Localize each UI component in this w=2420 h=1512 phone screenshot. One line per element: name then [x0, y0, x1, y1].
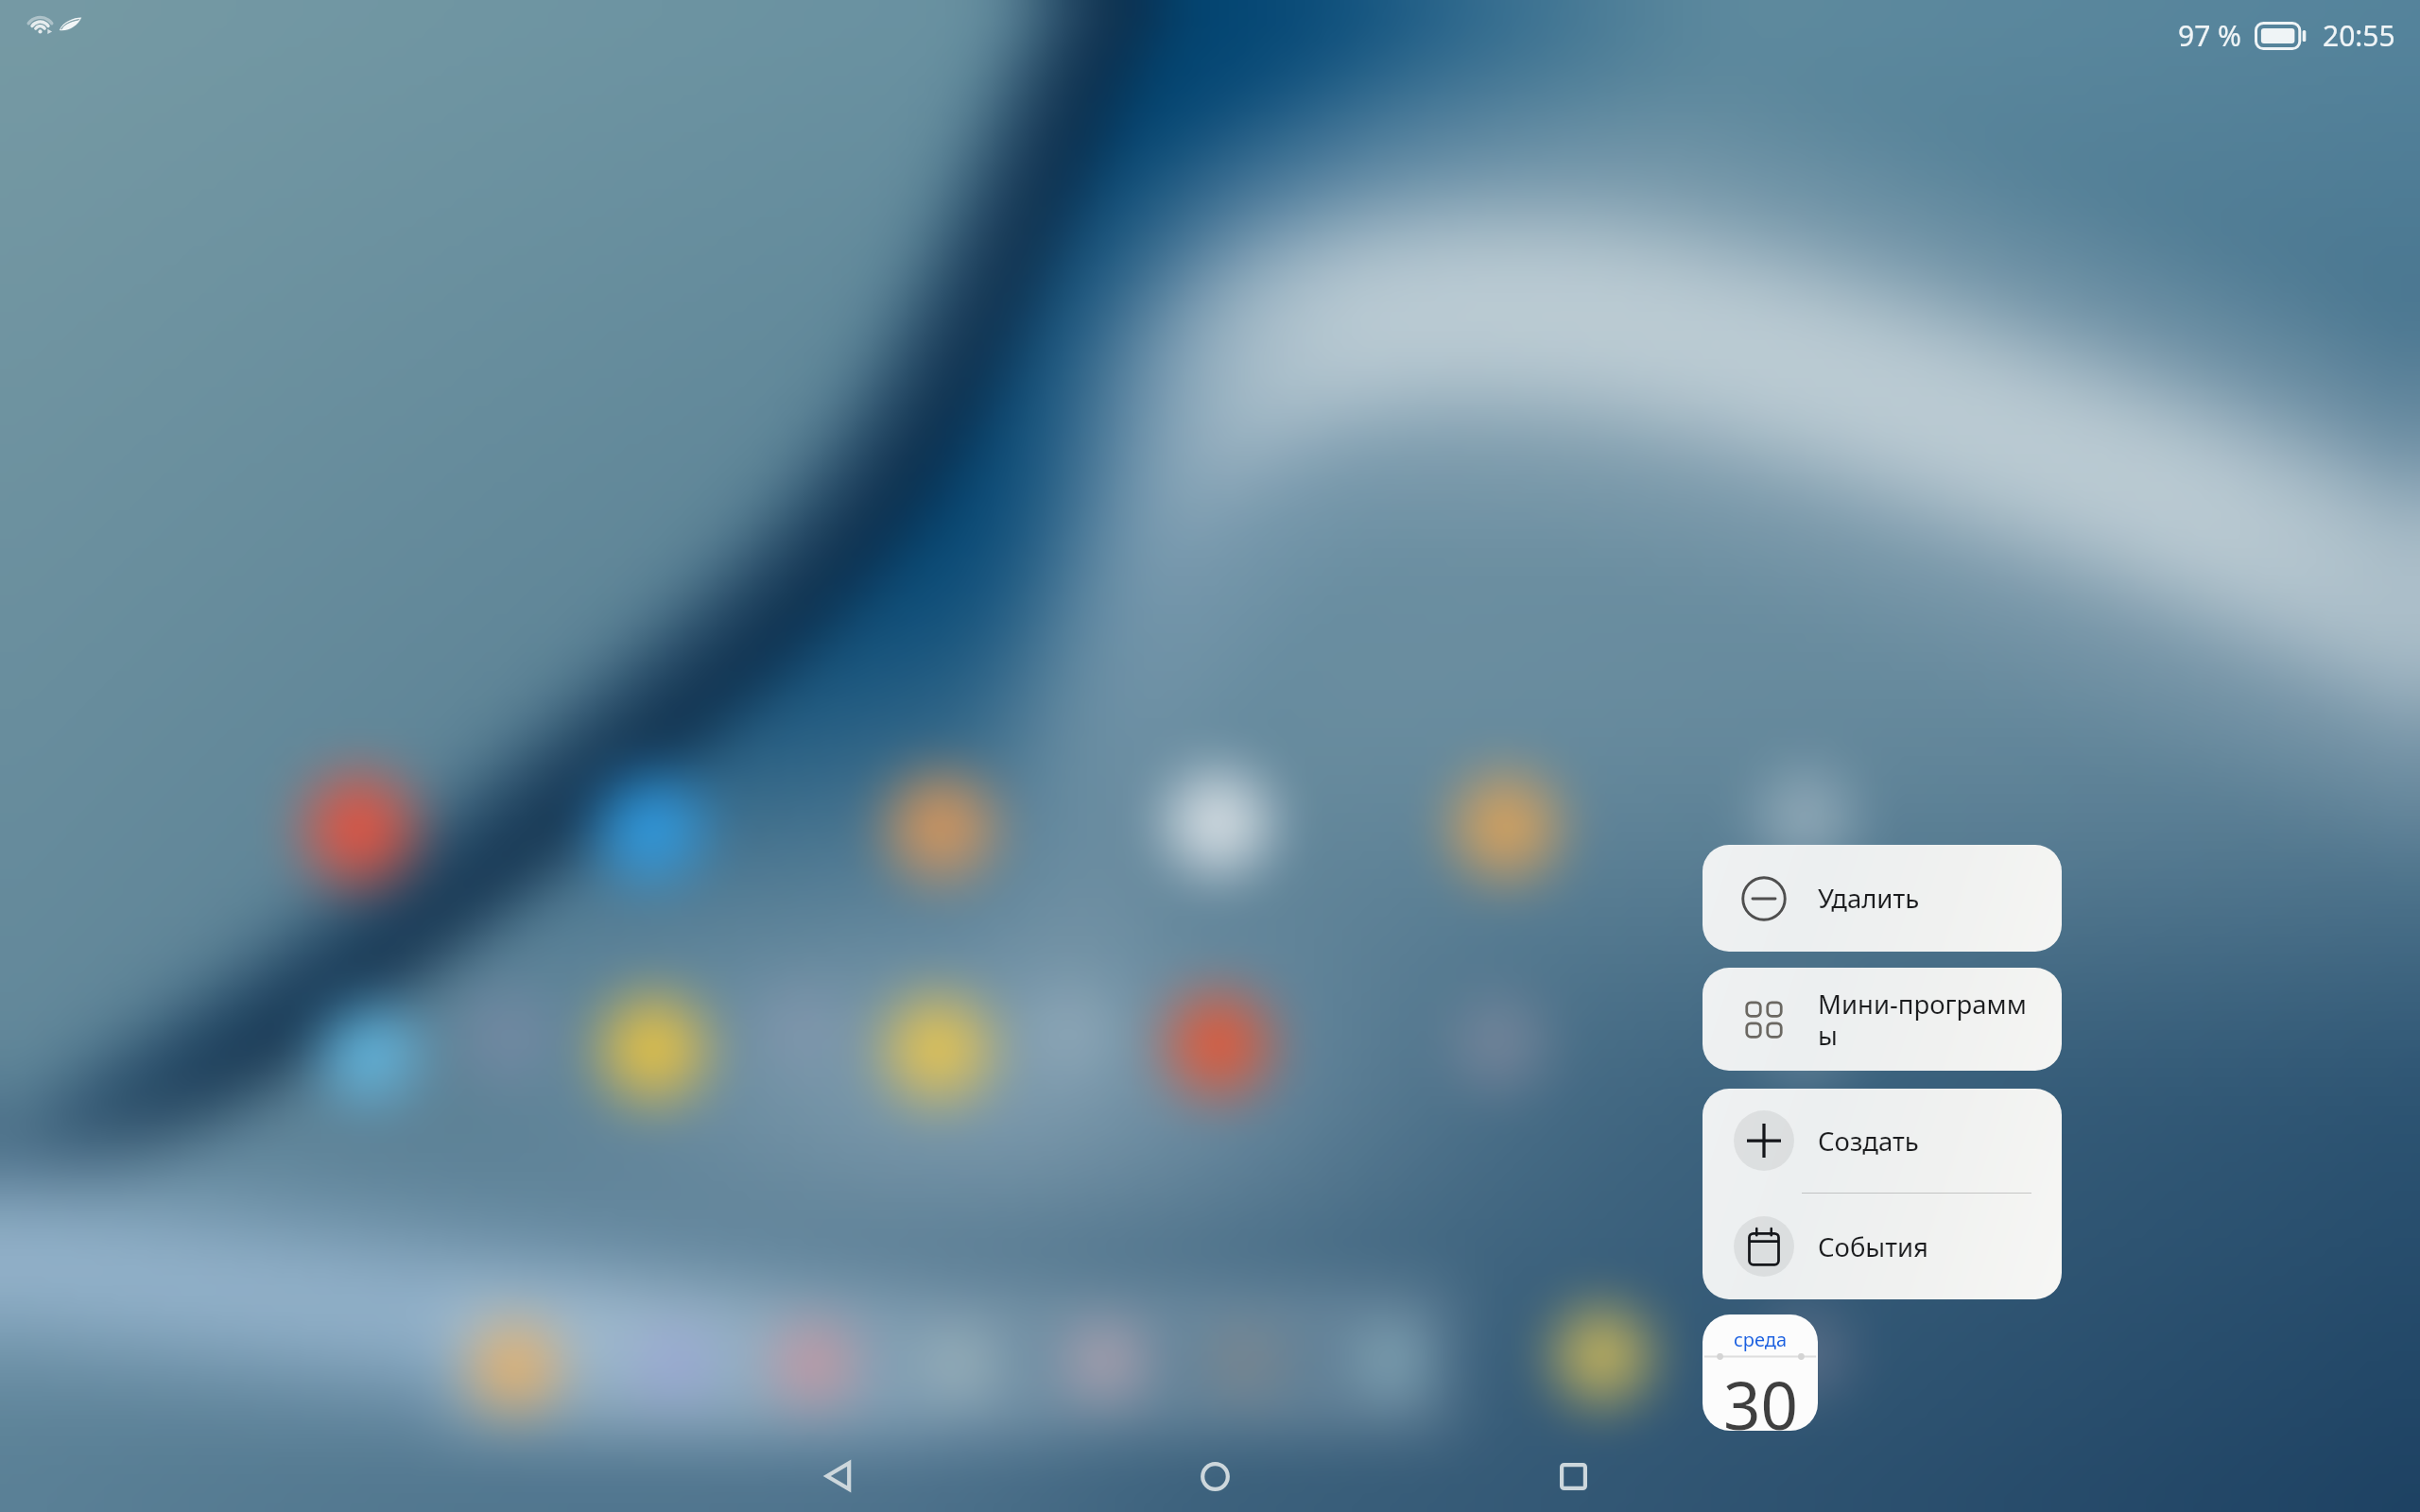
staticText: События [1818, 1229, 1928, 1264]
button[interactable]: Создать [1703, 1089, 2062, 1193]
staticText: 30 [1723, 1360, 1798, 1431]
button[interactable]: Back [805, 1442, 873, 1510]
staticText: Создать [1818, 1124, 1919, 1159]
button[interactable]: События [1703, 1194, 2062, 1299]
button[interactable]: Мини-программ ы [1703, 968, 2062, 1071]
button[interactable]: Recents [1539, 1442, 1607, 1510]
staticText: Мини-программ ы [1818, 987, 2027, 1053]
button[interactable]: Home [1181, 1442, 1249, 1510]
staticText: Удалить [1818, 881, 1920, 916]
staticText: среда [1734, 1327, 1788, 1352]
staticText: 20:55 [2323, 16, 2395, 55]
staticText: 97 % [2178, 16, 2242, 55]
button[interactable]: Удалить [1703, 845, 2062, 952]
button[interactable]: Calendar [1703, 1314, 1818, 1431]
